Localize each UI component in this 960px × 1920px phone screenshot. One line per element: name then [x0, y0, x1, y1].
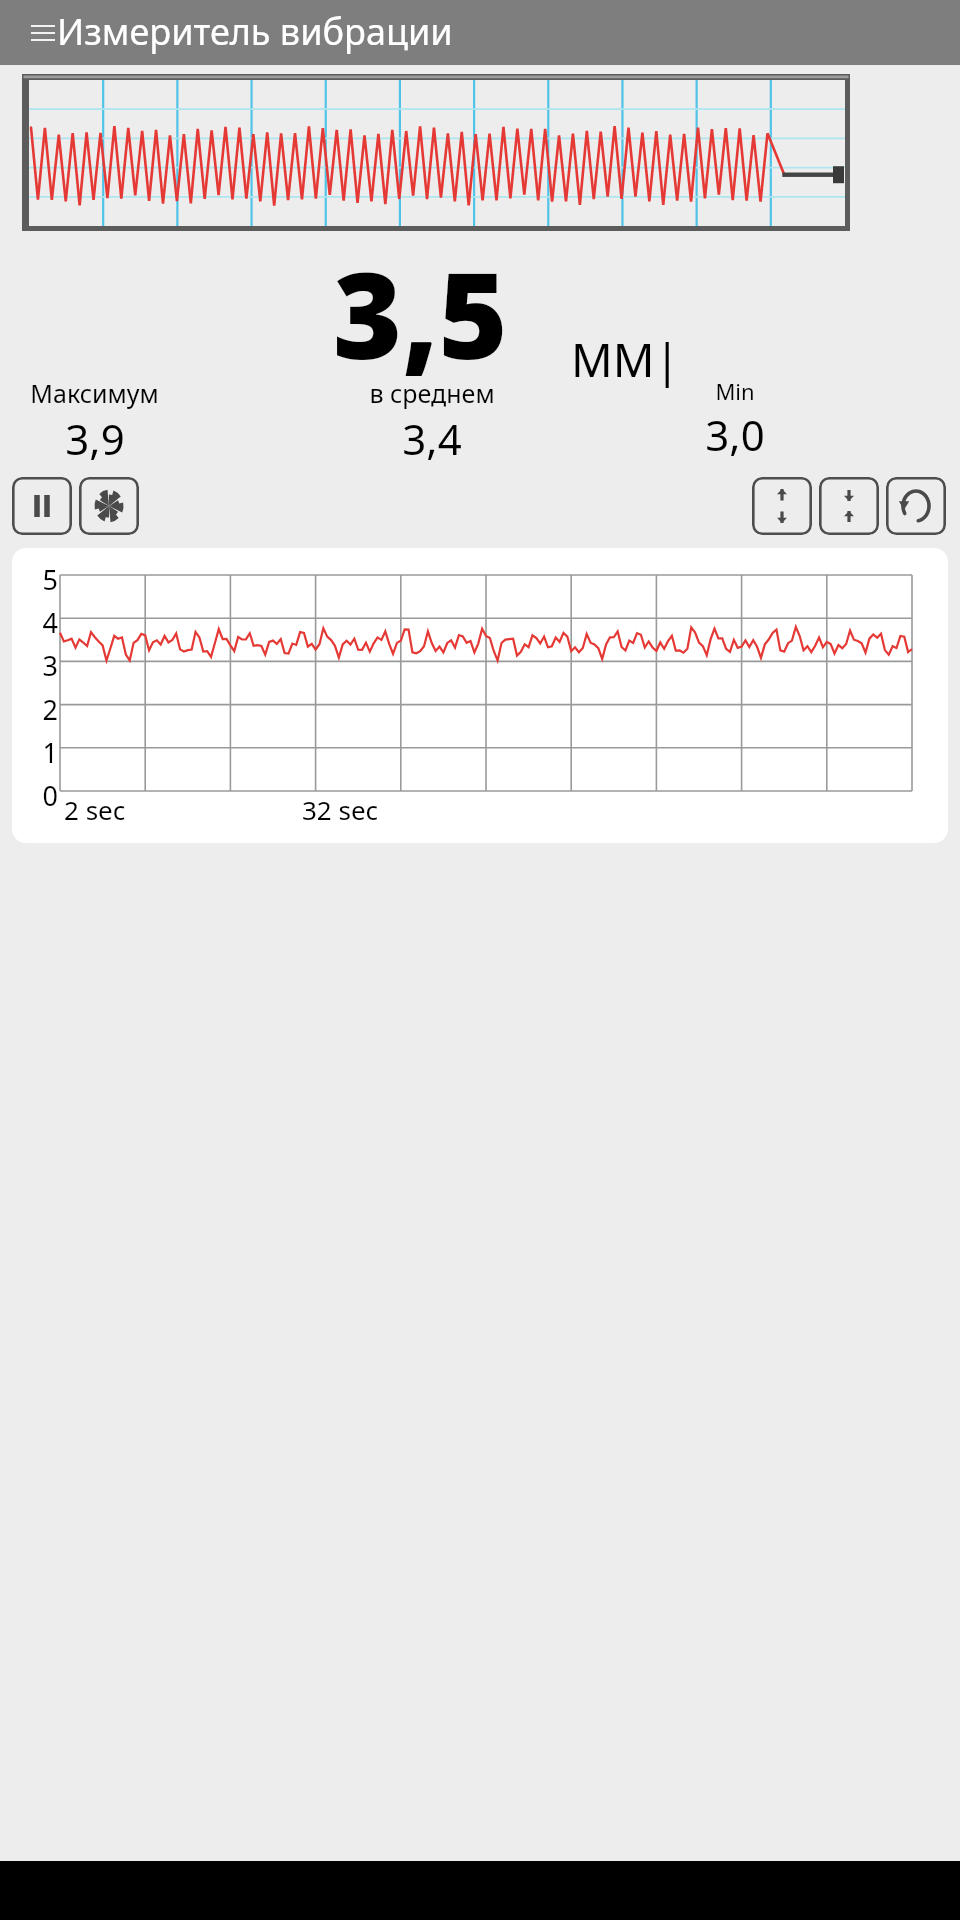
button[interactable]: Zoom in vertical	[819, 477, 879, 535]
staticText: 3	[42, 647, 58, 684]
staticText: 1	[42, 734, 58, 771]
staticText: 4	[42, 604, 58, 641]
staticText: 32 sec	[302, 792, 379, 827]
staticText: 2 sec	[64, 792, 126, 827]
staticText: 3,5	[333, 233, 508, 394]
button[interactable]: Pause	[12, 477, 72, 535]
button[interactable]: Capture	[79, 477, 139, 535]
staticText: Максимум	[30, 376, 159, 410]
button[interactable]: Zoom out vertical	[752, 477, 812, 535]
staticText: в среднем	[369, 376, 495, 410]
staticText: MM|	[571, 328, 680, 391]
staticText: Измеритель вибрации	[57, 7, 453, 56]
staticText: Min	[715, 376, 755, 406]
button[interactable]: Reset	[886, 477, 946, 535]
staticText: 0	[42, 777, 58, 814]
button[interactable]: Menu	[20, 10, 66, 56]
staticText: 3,0	[705, 406, 765, 463]
staticText: 3,4	[402, 410, 462, 463]
staticText: 2	[42, 691, 58, 728]
button[interactable]: 5	[12, 548, 948, 843]
staticText: 5	[42, 561, 58, 598]
staticText: 3,9	[65, 410, 125, 463]
